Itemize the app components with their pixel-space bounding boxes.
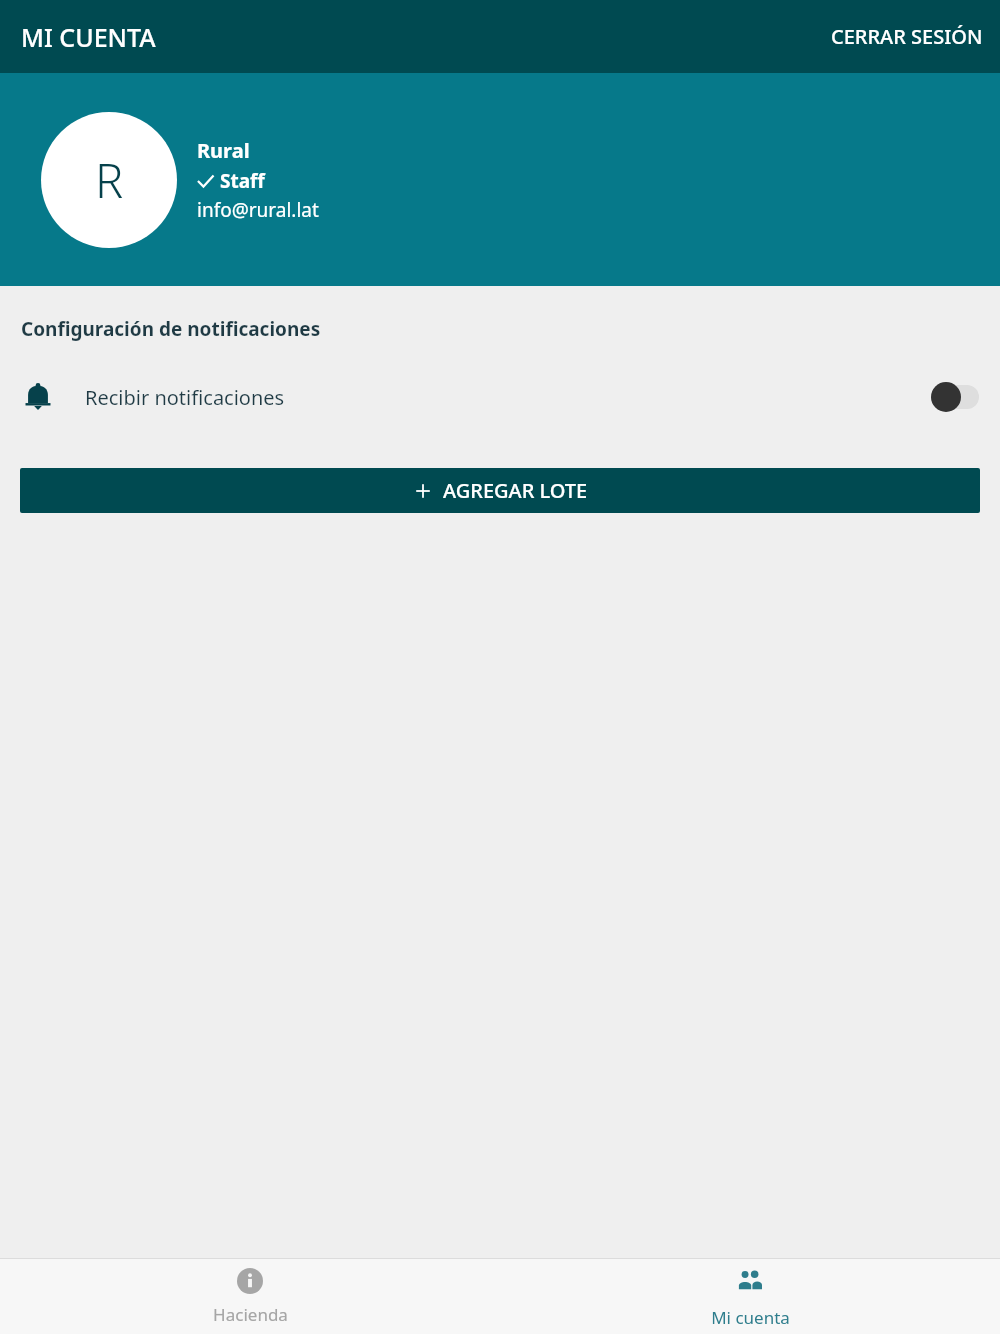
staticText: Mi cuenta: [711, 1306, 790, 1326]
button[interactable]: AGREGAR LOTE: [20, 468, 980, 513]
button[interactable]: Recibir notificaciones: [0, 373, 1000, 421]
staticText: MI CUENTA: [21, 20, 156, 54]
staticText: info@rural.lat: [197, 197, 319, 223]
staticText: R: [95, 148, 124, 212]
staticText: Staff: [220, 168, 265, 194]
staticText: Recibir notificaciones: [85, 384, 285, 411]
button[interactable]: Mi cuenta: [500, 1259, 1000, 1334]
staticText: AGREGAR LOTE: [443, 477, 588, 504]
staticText: CERRAR SESIÓN: [831, 23, 983, 50]
staticText: Configuración de notificaciones: [21, 316, 321, 342]
button[interactable]: CERRAR SESIÓN: [814, 11, 1000, 62]
button[interactable]: Recibir notificaciones: [931, 382, 979, 412]
button[interactable]: Hacienda: [0, 1260, 500, 1334]
staticText: Rural: [197, 137, 250, 164]
staticText: Hacienda: [213, 1303, 288, 1326]
